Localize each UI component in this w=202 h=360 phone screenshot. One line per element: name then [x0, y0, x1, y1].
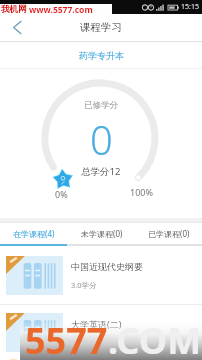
- button[interactable]: Back: [0, 14, 34, 41]
- staticText: 大学英语(二): [71, 318, 122, 330]
- button[interactable]: 未学课程(0): [68, 223, 135, 244]
- staticText: 100%: [130, 186, 153, 198]
- button[interactable]: 大学英语(二): [0, 305, 202, 360]
- staticText: 0%: [55, 188, 68, 200]
- staticText: www.5577.com: [29, 4, 93, 14]
- staticText: 在学课程(4): [13, 228, 55, 239]
- staticText: 总学分12: [81, 165, 121, 178]
- staticText: 3.0学分: [71, 280, 97, 290]
- staticText: 15:15: [181, 2, 199, 12]
- staticText: 已学课程(0): [148, 228, 190, 239]
- staticText: 未学课程(0): [81, 228, 123, 239]
- staticText: 0: [90, 112, 113, 166]
- button[interactable]: 中国近现代史纲要: [0, 246, 202, 304]
- staticText: 课程学习: [80, 21, 122, 34]
- staticText: 5577: [25, 316, 108, 360]
- staticText: .COM: [108, 316, 202, 360]
- button[interactable]: 已学课程(0): [135, 223, 202, 244]
- staticText: 已修学分: [84, 100, 118, 111]
- staticText: 3.0学分: [71, 338, 97, 348]
- staticText: 药学专升本: [79, 50, 124, 61]
- button[interactable]: 在学课程(4): [0, 223, 68, 244]
- staticText: 我机网: [1, 4, 27, 14]
- staticText: 中国近现代史纲要: [71, 261, 143, 272]
